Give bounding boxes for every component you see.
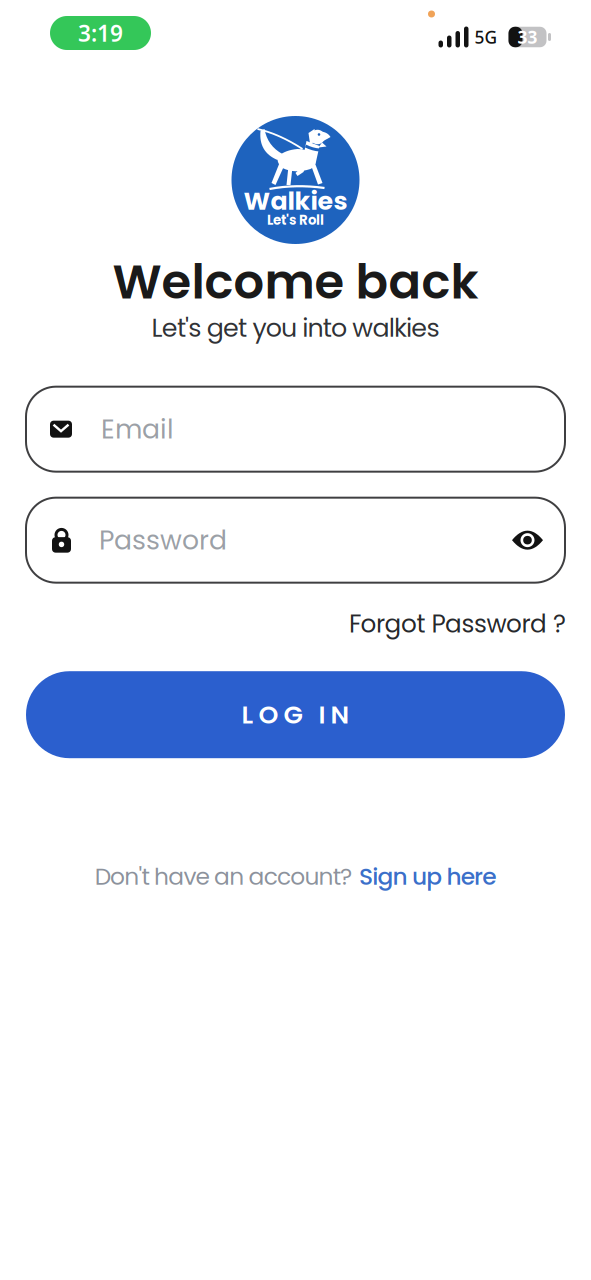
staticText: 3:19: [78, 18, 123, 48]
button[interactable]: 3:19: [50, 16, 151, 50]
button[interactable]: Sign up here: [359, 860, 496, 893]
button[interactable]: Password: [0, 498, 591, 583]
staticText: Email: [101, 410, 174, 448]
staticText: Walkies: [243, 183, 347, 219]
button[interactable]: Forgot Password ?: [349, 607, 566, 641]
button[interactable]: Email: [0, 387, 591, 472]
staticText: Password: [99, 521, 227, 559]
staticText: 5G: [474, 25, 497, 48]
staticText: Welcome back: [112, 248, 478, 315]
staticText: Forgot Password ?: [349, 607, 566, 641]
staticText: Don't have an account?: [95, 860, 352, 893]
button[interactable]: L O G I N: [26, 671, 565, 758]
staticText: L O G I N: [241, 697, 349, 732]
staticText: 33: [517, 25, 537, 48]
staticText: Sign up here: [359, 860, 496, 893]
staticText: Let's get you into walkies: [151, 310, 439, 346]
staticText: Let's Roll: [267, 211, 324, 229]
